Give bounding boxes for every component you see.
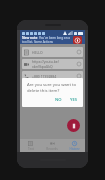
staticText: You've been long on a list a fall [39,36,73,40]
button[interactable]: HELLO [22,47,83,57]
staticText: xbnVkpaGkQ [32,64,53,69]
staticText: History [69,147,80,150]
staticText: New note [22,36,39,40]
staticText: +880 17392884 [32,74,57,79]
button[interactable]: Text [20,139,41,152]
button[interactable]: https://youtu.be/ [22,59,83,69]
staticText: HELLO [32,50,43,55]
button[interactable]: Add note [67,119,80,132]
button[interactable]: +880 17392884 [22,71,83,81]
button[interactable]: Records [41,139,63,152]
staticText: https://youtu.be/ [32,59,60,64]
button[interactable]: History [63,139,85,152]
staticText: Records [46,147,58,150]
staticText: Text [28,147,34,150]
staticText: NO [55,97,62,103]
button[interactable]: YES [69,96,79,104]
staticText: YES [70,97,78,103]
button[interactable]: NO [54,96,63,104]
button[interactable]: Stop recording [73,36,82,44]
staticText: tool list. Some Actions [22,40,53,44]
staticText: Are you sure you want to delete this ite… [27,82,79,93]
